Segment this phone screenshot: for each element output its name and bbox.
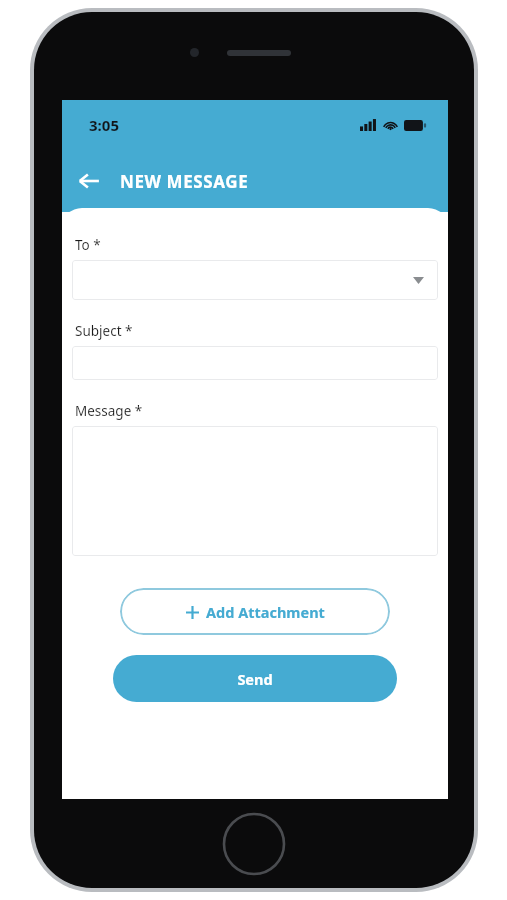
staticText: 3:05 <box>89 115 119 135</box>
button[interactable] <box>72 346 438 380</box>
staticText: NEW MESSAGE <box>120 170 249 193</box>
button[interactable] <box>72 260 438 300</box>
staticText: Subject * <box>75 322 133 340</box>
button[interactable]: Back <box>68 160 110 202</box>
button[interactable] <box>72 426 438 556</box>
staticText: To * <box>75 236 101 254</box>
button[interactable]: Add Attachment <box>120 588 390 635</box>
button[interactable]: Send <box>113 655 397 702</box>
staticText: Add Attachment <box>206 602 325 622</box>
staticText: Send <box>237 669 273 689</box>
staticText: Message * <box>75 402 143 420</box>
